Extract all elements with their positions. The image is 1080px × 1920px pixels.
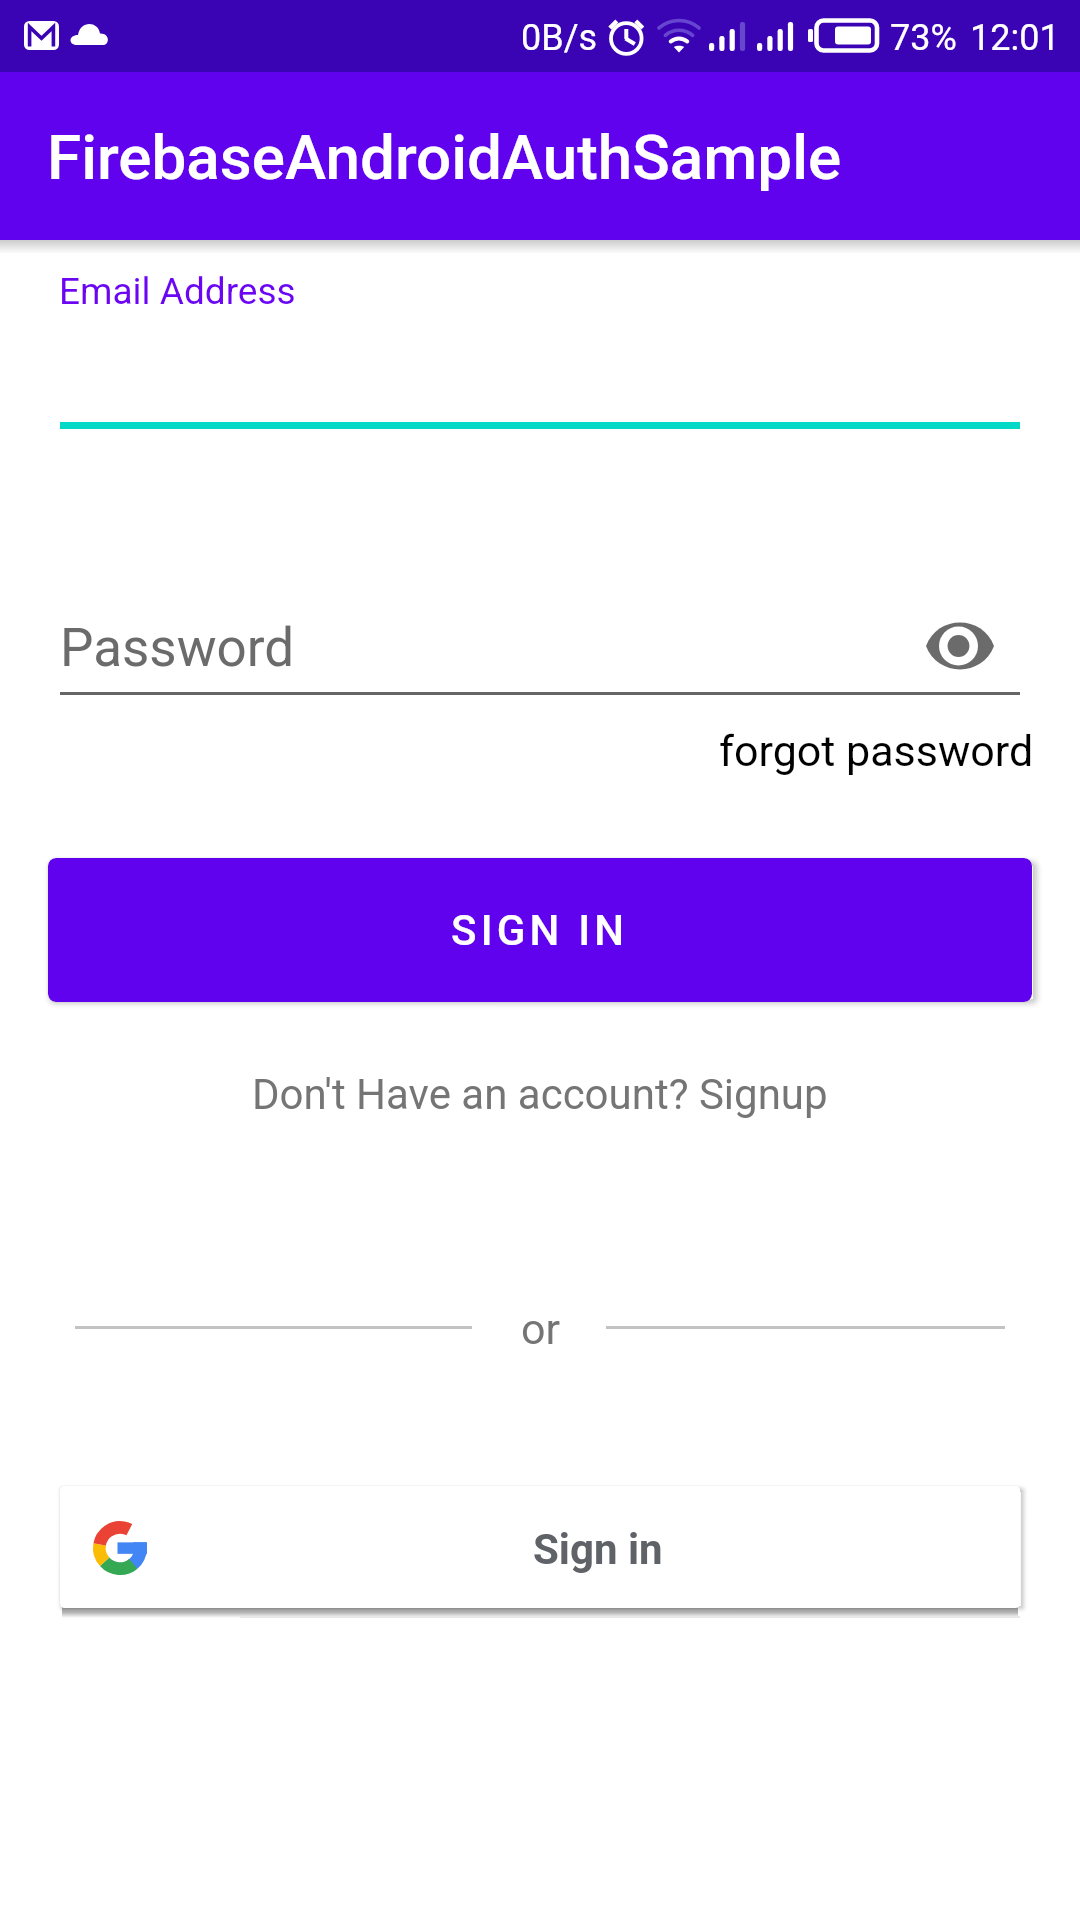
staticText: Password bbox=[60, 617, 295, 679]
staticText: Sign in bbox=[533, 1525, 663, 1574]
staticText: 73% bbox=[890, 17, 957, 59]
button[interactable]: Password field bbox=[60, 600, 880, 695]
staticText: 12:01 bbox=[970, 17, 1060, 59]
staticText: FirebaseAndroidAuthSample bbox=[47, 121, 842, 194]
staticText: Don't Have an account? Signup bbox=[252, 1070, 828, 1119]
button[interactable]: Show password bbox=[908, 602, 1012, 690]
button[interactable]: forgot password bbox=[704, 715, 1034, 787]
button[interactable]: SIGN IN bbox=[48, 858, 1032, 1002]
staticText: or bbox=[521, 1304, 561, 1354]
staticText: SIGN IN bbox=[451, 906, 629, 955]
button[interactable]: Don't Have an account? Signup bbox=[200, 1054, 880, 1134]
staticText: 0B/s bbox=[521, 17, 598, 59]
staticText: Email Address bbox=[59, 270, 296, 313]
button[interactable]: Email Address field bbox=[59, 266, 1020, 429]
staticText: forgot password bbox=[719, 726, 1034, 776]
button[interactable]: Sign in bbox=[60, 1486, 1020, 1608]
